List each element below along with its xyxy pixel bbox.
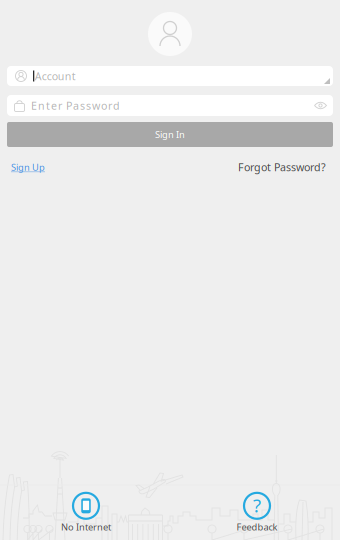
staticText: No Internet — [61, 521, 111, 533]
staticText: Forgot Password? — [238, 160, 326, 174]
button[interactable]: Forgot Password? — [238, 160, 333, 174]
button[interactable]: Sign Up — [7, 161, 45, 173]
button[interactable]: ? — [227, 493, 287, 533]
staticText: Account — [35, 69, 76, 83]
staticText: Sign Up — [11, 161, 45, 173]
staticText: Sign In — [155, 128, 185, 141]
staticText: ? — [253, 493, 261, 518]
staticText: Feedback — [236, 521, 277, 533]
button[interactable]: Sign In — [7, 122, 333, 147]
button[interactable]: No Internet — [56, 493, 116, 533]
staticText: E n t e r P a s s w o r d — [31, 98, 120, 113]
